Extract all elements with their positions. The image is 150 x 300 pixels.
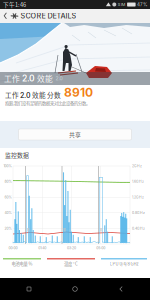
staticText: 1.6GHz (132, 179, 144, 184)
staticText: 100% (3, 164, 11, 168)
staticText: 2.0 (20, 91, 31, 100)
staticText: 温度 °C (64, 261, 78, 267)
staticText: SIM (118, 2, 126, 7)
staticText: 共享 (69, 130, 81, 139)
staticText: 工作 (4, 73, 22, 84)
staticText: 效能 (35, 73, 53, 84)
staticText: 05:00 (96, 246, 105, 250)
staticText: 80% (4, 179, 11, 184)
staticText: 2.0 (54, 75, 62, 81)
staticText: 2.0 (22, 73, 35, 84)
staticText: 1.2GHz (132, 195, 144, 199)
button[interactable]: 共享 (18, 129, 131, 140)
button[interactable]: Home (58, 278, 92, 300)
staticText: 47% (137, 2, 147, 7)
staticText: 20% (4, 226, 11, 230)
staticText: 00:00 (8, 246, 17, 250)
staticText: 抱歉,我们没有足够的数据来对比此设备的分数。 (5, 100, 90, 106)
staticText: 效能 分数 (31, 90, 61, 100)
staticText: 0.8GHz (132, 211, 145, 215)
staticText: 工作 (5, 90, 20, 100)
staticText: SCORE DETAILS (20, 12, 76, 20)
staticText: 下午1:46 (3, 0, 26, 8)
staticText: 2GHz (132, 164, 142, 168)
staticText: 40% (4, 211, 11, 215)
staticText: CPU 0/4/8 GHz (109, 261, 138, 267)
staticText: 监控数据 (5, 151, 29, 159)
button[interactable]: Back (104, 278, 138, 300)
staticText: 60% (4, 195, 11, 199)
staticText: 03:20 (67, 246, 76, 250)
button[interactable]: Back (0, 9, 11, 23)
staticText: 电池电量 % (11, 261, 32, 267)
staticText: 01:40 (38, 246, 46, 250)
button[interactable]: Recents (12, 278, 46, 300)
staticText: 0.4GHz (132, 226, 145, 230)
staticText: 8910 (64, 85, 93, 100)
